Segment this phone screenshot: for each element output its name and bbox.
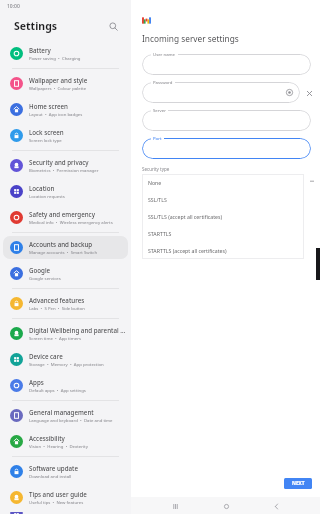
button[interactable]: Home screen (0, 98, 131, 121)
button[interactable]: STARTTLS (accept all certificates) (142, 242, 304, 259)
button[interactable]: Accounts and backup (3, 236, 128, 259)
staticText: Storage • Memory • App protection (29, 361, 104, 367)
button[interactable]: Location (0, 180, 131, 203)
staticText: STARTTLS (accept all certificates) (148, 247, 227, 254)
staticText: Lock screen (29, 128, 64, 136)
button[interactable]: SSL/TLS (142, 191, 304, 208)
button[interactable]: Show password (286, 89, 293, 96)
staticText: Location (29, 184, 55, 192)
button[interactable]: Digital Wellbeing and parental controls (0, 322, 131, 345)
staticText: NEXT (292, 480, 305, 487)
staticText: General management (29, 408, 94, 416)
staticText: Security and privacy (29, 158, 89, 166)
button[interactable] (142, 110, 311, 131)
staticText: Power saving • Charging (29, 55, 81, 61)
button[interactable]: Security and privacy (0, 154, 131, 177)
staticText: Server (153, 107, 166, 113)
staticText: Default apps • App settings (29, 387, 86, 393)
button[interactable]: Safety and emergency (0, 206, 131, 229)
button[interactable]: STARTTLS (142, 225, 304, 242)
button[interactable]: SSL/TLS (accept all certificates) (142, 208, 304, 225)
staticText: Accounts and backup (29, 240, 93, 248)
button[interactable]: Tips and user guide (0, 486, 131, 509)
staticText: Port (153, 135, 162, 141)
staticText: Password (153, 79, 173, 85)
staticText: Wallpaper and style (29, 76, 88, 84)
button[interactable]: Software update (0, 460, 131, 483)
staticText: Language and keyboard • Date and time (29, 417, 113, 423)
button[interactable]: About tablet (0, 512, 131, 514)
staticText: Download and install (29, 473, 72, 479)
button[interactable]: Wallpaper and style (0, 72, 131, 95)
staticText: Google (29, 266, 51, 274)
staticText: Battery (29, 46, 51, 54)
button[interactable]: NEXT (284, 478, 312, 489)
staticText: Settings (14, 19, 105, 33)
button[interactable]: Search (105, 18, 121, 34)
staticText: STARTTLS (148, 230, 172, 237)
staticText: Software update (29, 464, 78, 472)
staticText: Home screen (29, 102, 68, 110)
button[interactable]: Apps (0, 374, 131, 397)
staticText: Advanced features (29, 296, 85, 304)
staticText: Biometrics • Permission manager (29, 167, 99, 173)
staticText: Incoming server settings (142, 33, 239, 44)
staticText: Screen time • App timers (29, 335, 81, 341)
staticText: Google services (29, 275, 61, 281)
staticText: User name (153, 51, 176, 57)
staticText: Labs • S Pen • Side button (29, 305, 85, 311)
staticText: Accessibility (29, 434, 65, 442)
staticText: Wallpapers • Colour palette (29, 85, 87, 91)
staticText: SSL/TLS (accept all certificates) (148, 213, 222, 220)
button[interactable] (142, 54, 311, 75)
staticText: Digital Wellbeing and parental controls (29, 326, 126, 334)
button[interactable]: Advanced features (0, 292, 131, 315)
button[interactable]: Back (269, 499, 283, 513)
staticText: 10:00 (7, 3, 20, 10)
staticText: SSL/TLS (148, 196, 167, 203)
button[interactable]: Lock screen (0, 124, 131, 147)
button[interactable]: Device care (0, 348, 131, 371)
staticText: Layout • App icon badges (29, 111, 83, 117)
button[interactable]: Clear (304, 88, 314, 98)
staticText: Device care (29, 352, 63, 360)
staticText: Medical info • Wireless emergency alerts (29, 219, 113, 225)
staticText: Safety and emergency (29, 210, 95, 218)
button[interactable] (142, 138, 311, 159)
staticText: Location requests (29, 193, 65, 199)
staticText: Tips and user guide (29, 490, 87, 498)
staticText: None (148, 179, 162, 186)
staticText: Security type (142, 166, 170, 172)
button[interactable]: Home (219, 499, 233, 513)
button[interactable]: General management (0, 404, 131, 427)
staticText: Apps (29, 378, 44, 386)
staticText: Vision • Hearing • Dexterity (29, 443, 88, 449)
button[interactable]: None (142, 174, 304, 191)
button[interactable]: Battery (0, 42, 131, 65)
button[interactable]: Accessibility (0, 430, 131, 453)
button[interactable]: Recents (168, 499, 182, 513)
button[interactable]: Google (0, 262, 131, 285)
staticText: Screen lock type (29, 137, 62, 143)
button[interactable]: Show password (142, 82, 300, 103)
staticText: Useful tips • New features (29, 499, 84, 505)
staticText: Manage accounts • Smart Switch (29, 249, 98, 255)
